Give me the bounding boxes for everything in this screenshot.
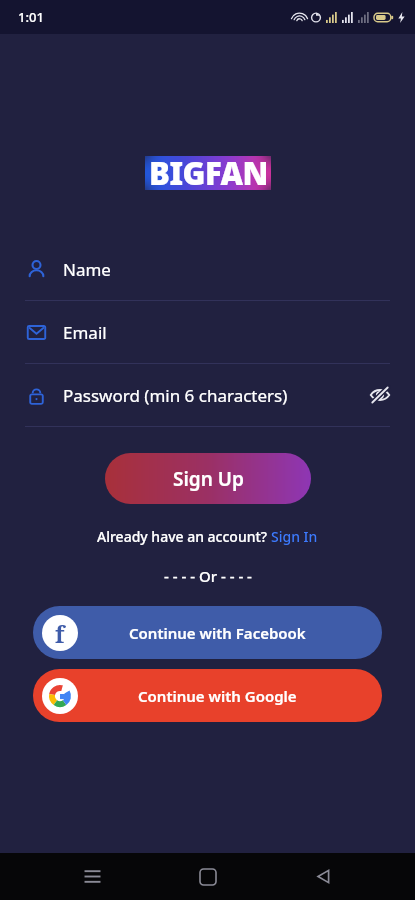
button[interactable]: f	[33, 606, 382, 659]
staticText: Password (min 6 characters)	[63, 384, 288, 407]
staticText: - - - - Or - - - -	[164, 566, 252, 586]
staticText: BIGFAN	[149, 152, 268, 194]
staticText: Continue with Facebook	[129, 623, 306, 643]
button[interactable]: Name	[0, 238, 415, 301]
staticText: Already have an account?	[97, 527, 271, 546]
button[interactable]: Back	[299, 853, 347, 900]
staticText: Sign In	[271, 527, 318, 546]
staticText: Continue with Google	[138, 686, 297, 706]
staticText: 1:01	[18, 8, 44, 26]
staticText: Sign Up	[173, 466, 244, 492]
button[interactable]: Sign Up	[105, 453, 311, 504]
button[interactable]: Recents	[68, 853, 116, 900]
staticText: f	[55, 618, 65, 649]
button[interactable]: Continue with Google	[33, 669, 382, 722]
button[interactable]: Sign In	[271, 527, 318, 546]
button[interactable]: Email	[0, 301, 415, 364]
button[interactable]: Home	[184, 853, 232, 900]
button[interactable]: Password (min 6 characters)	[0, 364, 415, 427]
staticText: Name	[63, 258, 111, 281]
button[interactable]: Show password	[367, 382, 393, 408]
staticText: Email	[63, 321, 107, 344]
